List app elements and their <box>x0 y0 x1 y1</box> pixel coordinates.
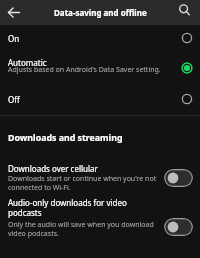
button[interactable]: Audio-only downloads for video podcasts <box>0 196 200 244</box>
staticText: On <box>8 33 20 44</box>
button[interactable] <box>0 0 25 25</box>
staticText: Off <box>8 94 20 105</box>
staticText: Adjusts based on Android's Data Saver se… <box>8 65 161 75</box>
staticText: Downloads and streaming <box>8 132 123 144</box>
staticText: Audio-only downloads for video podcasts <box>8 197 127 218</box>
button[interactable]: On <box>0 25 200 51</box>
staticText: Automatic <box>8 57 47 68</box>
staticText: Only the audio will save when you downlo… <box>8 220 154 238</box>
button[interactable]: Downloads over cellular <box>0 157 200 196</box>
button[interactable] <box>174 0 195 21</box>
button[interactable]: Off <box>0 83 200 115</box>
button[interactable]: Automatic <box>0 51 200 82</box>
staticText: Downloads start or continue when you're … <box>8 174 157 192</box>
staticText: Downloads over cellular <box>8 163 98 174</box>
button[interactable] <box>164 169 193 187</box>
staticText: Data-saving and offline <box>54 7 147 18</box>
button[interactable] <box>164 218 193 236</box>
